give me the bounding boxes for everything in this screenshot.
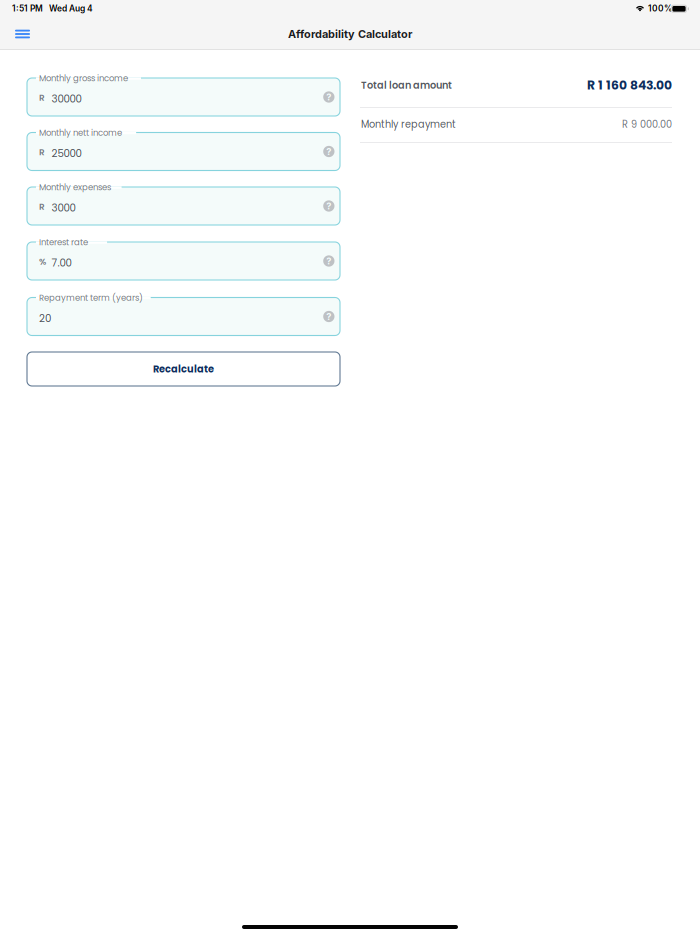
staticText: ? — [326, 200, 331, 212]
button[interactable]: Help about Monthly expenses — [323, 200, 334, 212]
staticText: R 9 000.00 — [622, 117, 672, 131]
staticText: Monthly expenses — [39, 181, 111, 193]
staticText: R 1 160 843.00 — [587, 76, 672, 94]
button[interactable]: Recalculate — [27, 352, 340, 386]
staticText: 1:51 PM — [12, 3, 43, 14]
staticText: ? — [326, 146, 331, 157]
staticText: ? — [326, 311, 331, 322]
staticText: Affordability Calculator — [288, 27, 412, 41]
staticText: Monthly gross income — [39, 72, 128, 84]
staticText: ? — [326, 91, 331, 103]
staticText: Monthly nett income — [39, 127, 122, 139]
staticText: Recalculate — [153, 362, 214, 376]
button[interactable]: Help about Monthly nett income — [323, 146, 334, 157]
button[interactable]: Help about Repayment term (years) — [323, 311, 334, 322]
staticText: R — [39, 146, 45, 158]
staticText: ? — [326, 255, 331, 267]
staticText: 25000 — [52, 146, 82, 161]
button[interactable]: Help about Monthly gross income — [323, 91, 334, 103]
staticText: 100% — [648, 3, 672, 14]
staticText: % — [39, 255, 46, 268]
staticText: R — [39, 91, 45, 104]
staticText: Total loan amount — [361, 78, 452, 92]
staticText: Repayment term (years) — [39, 292, 143, 304]
staticText: 3000 — [52, 201, 76, 215]
staticText: Wed Aug 4 — [49, 3, 93, 14]
staticText: 30000 — [52, 92, 82, 106]
staticText: R — [39, 200, 45, 213]
staticText: Monthly repayment — [361, 117, 456, 131]
button[interactable]: Menu — [7, 19, 38, 49]
button[interactable]: Help about Interest rate — [323, 255, 334, 267]
staticText: 20 — [39, 311, 51, 326]
staticText: Interest rate — [39, 236, 88, 248]
staticText: 7.00 — [52, 256, 72, 270]
